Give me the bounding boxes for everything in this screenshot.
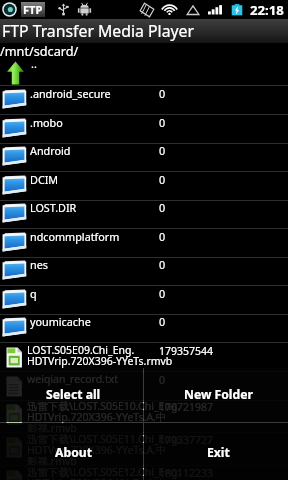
button[interactable]: 迅雷下载\LOST.S05E10.Chi_Eng. (0, 400, 288, 433)
staticText: New Folder (184, 386, 253, 403)
button[interactable]: 迅雷下载\LOST.S05E11.Chi_Eng. (0, 433, 288, 466)
staticText: youmicache (30, 314, 91, 329)
button[interactable]: .android_secure (0, 86, 288, 115)
button[interactable]: Exit (144, 423, 288, 480)
staticText: weiqian_record.txt (27, 372, 119, 386)
staticText: 176721987 (159, 400, 214, 414)
staticText: HDTVrip.720X396-YYeTs.rmvb (27, 354, 173, 368)
staticText: 影视.rmvb (27, 454, 77, 468)
button[interactable]: About (0, 423, 143, 480)
staticText: 0 (159, 115, 166, 130)
button[interactable]: Android (0, 143, 288, 172)
staticText: .android_secure (30, 86, 111, 101)
staticText: 迅雷下载\LOST.S05E12.Chi_Eng. (27, 465, 181, 479)
staticText: 迅雷下载\LOST.S05E11.Chi_Eng. (27, 432, 181, 446)
staticText: HDTVrip.720X396-YYeTs.A.中 (27, 476, 167, 480)
button[interactable]: ndcommplatform (0, 229, 288, 258)
staticText: /mnt/sdcard/ (0, 42, 79, 57)
staticText: HDTVrip.720X396-YYeTs.A.中 (27, 410, 167, 424)
button[interactable]: weiqian_record.txt (0, 372, 288, 401)
staticText: 179357544 (159, 344, 214, 358)
staticText: 0 (159, 86, 166, 101)
button[interactable]: 迅雷下载\LOST.S05E12.Chi_Eng. (0, 466, 288, 480)
button[interactable]: New Folder (144, 368, 288, 422)
staticText: 0 (159, 229, 166, 244)
staticText: Android (30, 143, 71, 158)
staticText: nes (30, 257, 48, 272)
button[interactable]: youmicache (0, 314, 288, 343)
staticText: LOST.DIR (30, 200, 77, 215)
staticText: Select all (46, 386, 101, 403)
button[interactable]: DCIM (0, 172, 288, 201)
staticText: 0 (159, 286, 166, 301)
staticText: ndcommplatform (30, 229, 120, 244)
staticText: Exit (207, 444, 230, 461)
button[interactable]: LOST.S05E09.Chi_Eng. (0, 343, 288, 372)
staticText: 0 (159, 314, 166, 329)
staticText: .mobo (30, 115, 63, 130)
staticText: FTP Transfer Media Player (2, 20, 194, 42)
button[interactable]: LOST.DIR (0, 200, 288, 229)
staticText: 迅雷下载\LOST.S05E10.Chi_Eng. (27, 399, 181, 413)
staticText: DCIM (30, 172, 59, 187)
button[interactable]: nes (0, 257, 288, 286)
staticText: FTP (23, 2, 43, 17)
button[interactable]: .. (0, 58, 288, 86)
staticText: q (30, 286, 37, 301)
staticText: 22:18 (250, 1, 284, 19)
staticText: LOST.S05E09.Chi_Eng. (27, 343, 135, 357)
staticText: 0 (159, 143, 166, 158)
staticText: 0 (159, 200, 166, 215)
staticText: HDTVrip.720X396-YYeTs.A.中 (27, 443, 167, 457)
button[interactable]: Select all (0, 368, 143, 422)
staticText: 0 (159, 172, 166, 187)
staticText: 179337727 (159, 433, 214, 447)
button[interactable]: q (0, 286, 288, 315)
staticText: 0 (159, 373, 166, 387)
staticText: 影视.rmvb (27, 421, 77, 435)
staticText: About (55, 444, 92, 461)
button[interactable]: .mobo (0, 115, 288, 144)
staticText: 0 (159, 257, 166, 272)
staticText: .. (31, 56, 37, 71)
staticText: 180112233 (159, 466, 214, 480)
